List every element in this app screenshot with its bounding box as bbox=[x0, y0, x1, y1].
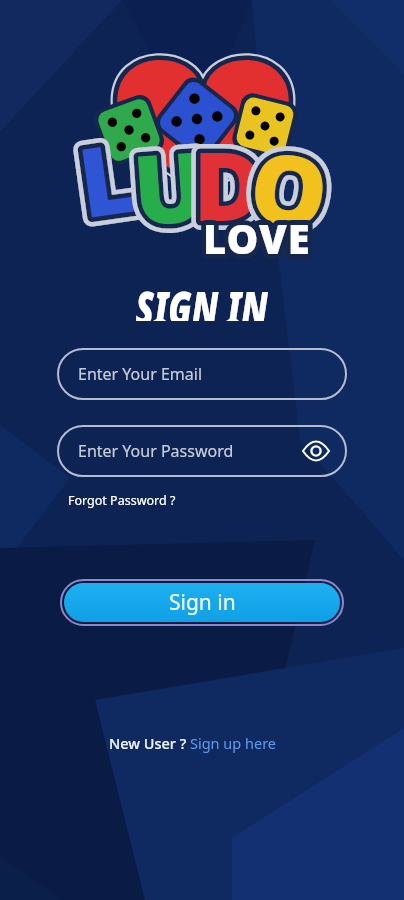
staticText: L bbox=[70, 109, 144, 246]
button[interactable]: Enter Your Email bbox=[57, 348, 347, 400]
staticText: Sign in bbox=[169, 588, 236, 617]
button[interactable]: Sign in bbox=[64, 583, 340, 622]
staticText: U bbox=[128, 118, 210, 253]
staticText: SIGN IN bbox=[135, 275, 268, 321]
staticText: Forgot Password ? bbox=[68, 492, 176, 509]
button[interactable]: Sign up here bbox=[190, 733, 277, 753]
staticText: D bbox=[193, 118, 264, 249]
staticText: O bbox=[242, 117, 337, 258]
staticText: LOVE bbox=[203, 211, 311, 265]
staticText: Sign up here bbox=[190, 733, 277, 753]
staticText: O bbox=[242, 117, 337, 258]
staticText: D bbox=[193, 118, 264, 249]
staticText: U bbox=[128, 118, 210, 253]
staticText: O bbox=[242, 117, 337, 258]
staticText: U bbox=[128, 118, 210, 253]
staticText: LOVE bbox=[203, 211, 311, 265]
staticText: L bbox=[70, 109, 144, 246]
staticText: Enter Your Email bbox=[78, 363, 203, 385]
button[interactable]: Forgot Password ? bbox=[68, 492, 176, 509]
button[interactable]: Enter Your Password bbox=[57, 425, 347, 477]
staticText: L bbox=[70, 109, 144, 246]
staticText: Enter Your Password bbox=[78, 440, 234, 462]
staticText: New User ? bbox=[109, 733, 190, 753]
staticText: D bbox=[193, 118, 264, 249]
